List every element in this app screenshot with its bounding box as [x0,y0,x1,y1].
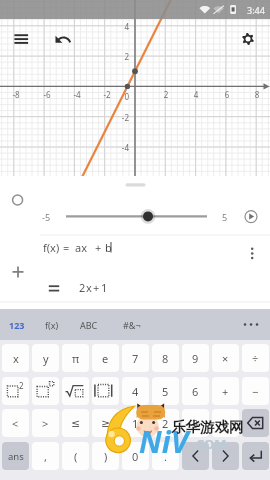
staticText: ( [74,449,78,464]
staticText: > [42,416,49,431]
button[interactable]: − [242,377,269,405]
staticText: ans [8,450,24,463]
staticText: 0 [132,449,139,464]
button[interactable]: Settings [236,27,260,51]
button[interactable]: ÷ [242,344,269,372]
button[interactable]: ( [62,442,89,470]
staticText: -2 [97,89,117,100]
staticText: 8 [162,351,169,366]
staticText: 4 [186,89,206,100]
button[interactable]: 6 [182,377,209,405]
staticText: 4 [132,384,139,399]
staticText: ax [75,240,87,255]
button[interactable]: 1 [122,409,149,437]
button[interactable]: + [212,377,239,405]
button[interactable]: 0 [122,442,149,470]
staticText: + [93,280,100,295]
staticText: 2 [111,51,129,62]
button[interactable]: f(x) [40,313,64,336]
button[interactable]: Menu [9,27,33,51]
button[interactable]: key28 [242,409,269,437]
staticText: . [164,449,167,464]
button[interactable]: ≤ [62,409,89,437]
button[interactable]: x [2,344,29,372]
staticText: 1 [132,416,139,431]
button[interactable]: key36 [182,442,209,470]
staticText: 7 [132,351,139,366]
staticText: ) [104,449,108,464]
staticText: 8 [247,89,267,100]
button[interactable]: × [212,344,239,372]
staticText: 2 [162,416,169,431]
button[interactable]: 9 [182,344,209,372]
staticText: COM [196,435,227,453]
staticText: × [222,351,229,366]
staticText: 6 [217,89,237,100]
staticText: ABC [80,319,98,331]
button[interactable]: 123 [4,313,30,336]
button[interactable]: ABC [75,313,103,336]
staticText: 4 [111,21,129,32]
button[interactable]: key12 [62,377,89,405]
staticText: 3 [192,416,199,431]
staticText: -4 [67,89,87,100]
staticText: 5 [162,384,169,399]
staticText: , [44,449,47,464]
staticText: NiV [139,421,189,462]
staticText: -6 [37,89,57,100]
button[interactable]: ans [2,442,29,470]
button[interactable]: < [2,409,29,437]
staticText: ≤ [71,417,81,430]
staticText: 0 [111,91,129,102]
staticText: = [63,240,70,255]
staticText: 1 [101,280,108,295]
button[interactable]: Undo [51,27,75,51]
button[interactable]: ) [92,442,119,470]
staticText: 2 [156,89,176,100]
button[interactable] [36,236,246,260]
staticText: − [252,384,259,399]
staticText: < [12,416,19,431]
button[interactable]: > [32,409,59,437]
button[interactable]: = [212,409,239,437]
staticText: 5 [222,211,228,223]
button[interactable]: , [32,442,59,470]
staticText: ÷ [252,351,259,366]
staticText: 6 [192,384,199,399]
button[interactable]: 2 [152,409,179,437]
staticText: -4 [111,142,129,153]
button[interactable]: 5 [152,377,179,405]
button[interactable]: key11 [32,377,59,405]
button[interactable]: key38 [242,442,269,470]
staticText: y [43,351,49,366]
button[interactable]: y [32,344,59,372]
button[interactable]: key10 [2,377,29,405]
staticText: -5 [42,211,51,223]
staticText: = [222,416,229,431]
staticText: -2 [111,112,129,123]
button[interactable]: 3 [182,409,209,437]
button[interactable]: key13 [92,377,119,405]
staticText: b [105,240,112,255]
staticText: 123 [9,319,25,331]
button[interactable]: 7 [122,344,149,372]
staticText: 乐华游戏网 [171,418,244,436]
button[interactable]: More [240,309,270,340]
staticText: e [102,351,109,366]
button[interactable]: key37 [212,442,239,470]
button[interactable]: #&¬ [118,313,146,336]
staticText: x [13,351,19,366]
button[interactable]: . [152,442,179,470]
button[interactable]: 8 [152,344,179,372]
button[interactable]: e [92,344,119,372]
button[interactable]: 4 [122,377,149,405]
staticText: 2 [79,280,86,295]
button[interactable]: ≥ [92,409,119,437]
staticText: 2 [19,380,24,391]
staticText: 9 [192,351,199,366]
button[interactable]: π [62,344,89,372]
staticText: #&¬ [123,319,141,331]
staticText: + [95,240,102,255]
staticText: π [72,351,80,366]
staticText: x [86,280,92,295]
